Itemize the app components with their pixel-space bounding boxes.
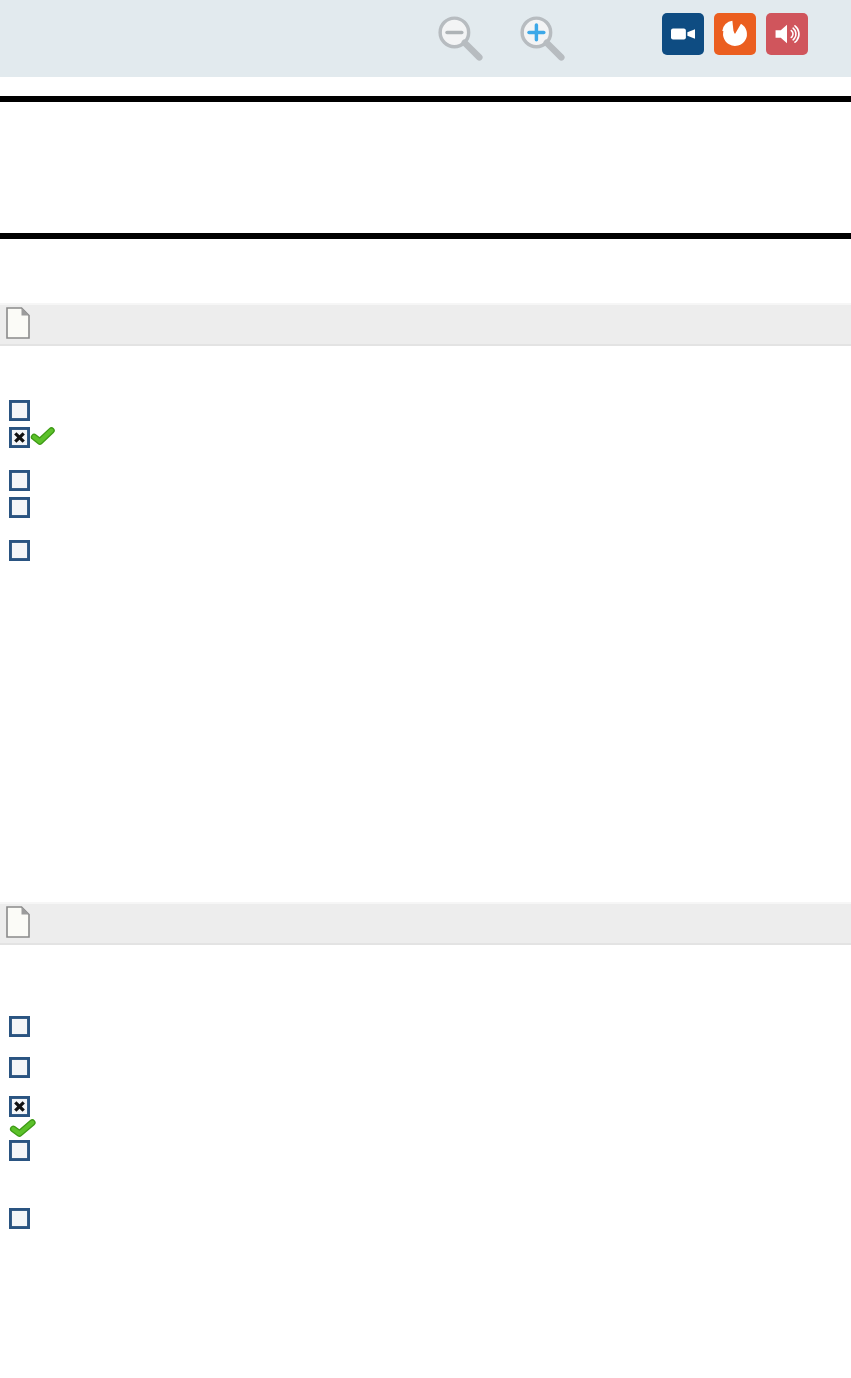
button[interactable]: Unchecked — [9, 1057, 30, 1078]
button[interactable]: Checked — [9, 1096, 30, 1117]
button[interactable]: Unchecked — [9, 497, 30, 518]
button[interactable]: Unchecked — [9, 1140, 30, 1161]
button[interactable]: Unchecked — [9, 1016, 30, 1037]
button[interactable]: Unchecked — [9, 400, 30, 421]
button[interactable]: Zoom out — [436, 14, 482, 60]
button[interactable]: Chart — [714, 13, 756, 55]
button[interactable]: Zoom in — [518, 14, 564, 60]
button[interactable]: Video — [662, 13, 704, 55]
button[interactable]: Sound — [766, 13, 808, 55]
button[interactable]: Unchecked — [9, 1208, 30, 1229]
button[interactable]: Unchecked — [9, 470, 30, 491]
button[interactable]: Unchecked — [9, 540, 30, 561]
button[interactable]: Checked — [9, 427, 30, 448]
